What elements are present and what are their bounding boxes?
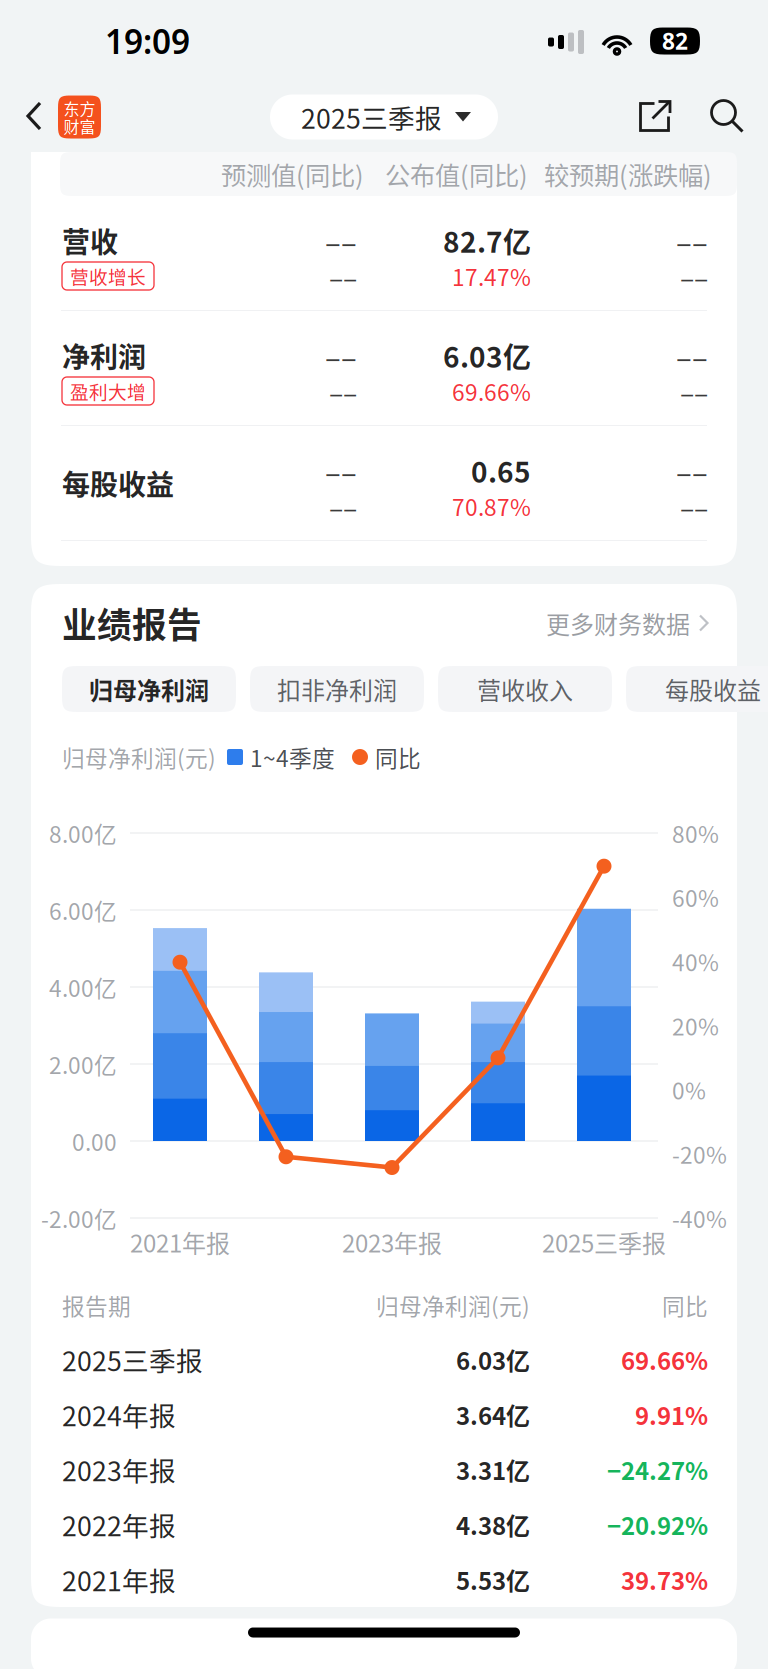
staticText: 9.91% [635,1397,708,1432]
staticText: 较预期(涨跌幅) [544,156,712,192]
staticText: –– [329,487,357,525]
staticText: 2023年报 [342,1225,442,1259]
staticText: 82 [662,26,688,56]
staticText: –– [325,449,357,492]
staticText: 3.64亿 [456,1397,530,1432]
staticText: 净利润 [62,335,146,376]
staticText: 业绩报告 [62,598,202,648]
button[interactable]: 分享 [627,89,683,145]
staticText: 4.38亿 [456,1507,530,1542]
staticText: -40% [672,1202,727,1234]
staticText: –– [676,334,708,377]
staticText: 60% [672,881,719,914]
staticText: –– [680,487,708,525]
staticText: 17.47% [452,260,531,292]
staticText: 预测值(同比) [221,156,364,192]
staticText: 盈利大增 [70,377,146,404]
button[interactable]: 扣非净利润 [250,666,424,712]
staticText: 财富 [63,114,95,138]
staticText: 82.7亿 [443,220,531,261]
staticText: 1~4季度 [250,741,335,773]
staticText: 2025三季报 [62,1340,203,1379]
staticText: −20.92% [607,1507,708,1542]
button[interactable]: 返回 [0,85,111,149]
staticText: 4.00亿 [49,971,117,1003]
staticText: 公布值(同比) [385,156,528,192]
staticText: 2023年报 [62,1450,176,1489]
staticText: -2.00亿 [41,1202,117,1234]
staticText: 3.31亿 [456,1452,530,1487]
staticText: 6.03亿 [443,335,531,376]
staticText: –– [325,334,357,377]
staticText: –– [680,257,708,295]
staticText: –– [325,219,357,262]
staticText: 报告期 [62,1289,131,1321]
staticText: 40% [672,945,719,978]
staticText: −24.27% [607,1452,708,1487]
button[interactable]: 营收收入 [438,666,612,712]
staticText: 2022年报 [62,1505,176,1544]
staticText: 0.65 [471,450,531,491]
staticText: 同比 [662,1289,708,1321]
staticText: 20% [672,1009,719,1042]
staticText: 2024年报 [62,1395,176,1434]
staticText: 同比 [375,741,421,773]
staticText: 归母净利润(元) [376,1289,530,1321]
staticText: 东方 [63,96,95,120]
staticText: 2.00亿 [49,1048,117,1080]
staticText: 6.00亿 [49,894,117,926]
staticText: -20% [672,1137,727,1170]
staticText: –– [680,372,708,410]
staticText: 2021年报 [62,1560,176,1599]
button[interactable]: 每股收益 [626,666,768,712]
staticText: –– [329,257,357,295]
staticText: 80% [672,817,719,849]
staticText: 2021年报 [130,1225,230,1259]
staticText: 8.00亿 [49,817,117,849]
staticText: 5.53亿 [456,1562,530,1597]
staticText: 39.73% [621,1562,708,1597]
staticText: 19:09 [105,19,190,63]
staticText: 营收 [62,220,118,261]
staticText: 营收增长 [70,262,146,289]
staticText: 更多财务数据 [546,606,690,640]
button[interactable]: 搜索 [699,89,755,145]
staticText: 每股收益 [62,463,174,503]
button[interactable]: 更多财务数据 [546,606,710,640]
staticText: 2025三季报 [301,98,442,136]
staticText: –– [329,372,357,410]
staticText: 归母净利润(元) [62,741,216,773]
button[interactable]: 2025三季报 [270,94,498,139]
staticText: 69.66% [621,1342,708,1377]
button[interactable]: 归母净利润 [62,666,236,712]
staticText: 每股收益 [665,672,761,706]
staticText: 营收收入 [477,672,573,706]
staticText: –– [676,449,708,492]
staticText: 69.66% [452,375,531,407]
staticText: –– [676,219,708,262]
staticText: 2025三季报 [542,1225,666,1259]
staticText: 0.00 [72,1125,117,1157]
staticText: 0% [672,1073,706,1106]
staticText: 扣非净利润 [277,672,397,706]
staticText: 70.87% [452,490,531,522]
staticText: 6.03亿 [456,1342,530,1377]
staticText: 归母净利润 [89,672,209,706]
